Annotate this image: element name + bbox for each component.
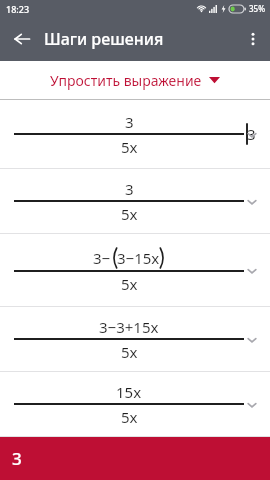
staticText: Шаги решения (44, 28, 236, 50)
staticText: 5x (121, 274, 138, 294)
staticText: 3 (12, 447, 22, 470)
staticText: 5x (121, 342, 138, 362)
staticText: 5x (121, 204, 138, 224)
staticText: 3 (125, 112, 134, 132)
staticText: 3 (125, 179, 134, 199)
staticText: 3−3+15x (99, 317, 159, 337)
button[interactable]: 15x (0, 372, 270, 436)
button[interactable]: 3−3+15x (0, 307, 270, 371)
other: Expand step (244, 397, 260, 413)
staticText: 5x (121, 407, 138, 427)
button[interactable]: 3− (0, 234, 270, 306)
button[interactable]: Упростить выражение (0, 61, 270, 99)
other: Expand step (244, 127, 260, 143)
button[interactable]: Back (0, 17, 44, 61)
staticText: 3−15x (117, 248, 160, 268)
other: Expand step (244, 332, 260, 348)
button[interactable]: 3 (0, 100, 270, 168)
staticText: Упростить выражение (50, 71, 202, 90)
other: Expand step (244, 263, 260, 279)
staticText: 3− (93, 248, 111, 268)
button[interactable]: More options (236, 17, 270, 61)
button[interactable]: 3 (0, 437, 270, 480)
staticText: 5x (121, 137, 138, 157)
staticText: 15x (116, 382, 142, 402)
staticText: 18:23 (6, 3, 30, 15)
button[interactable]: 3 (0, 169, 270, 233)
other: Expand step (244, 194, 260, 210)
staticText: 35% (249, 3, 265, 14)
